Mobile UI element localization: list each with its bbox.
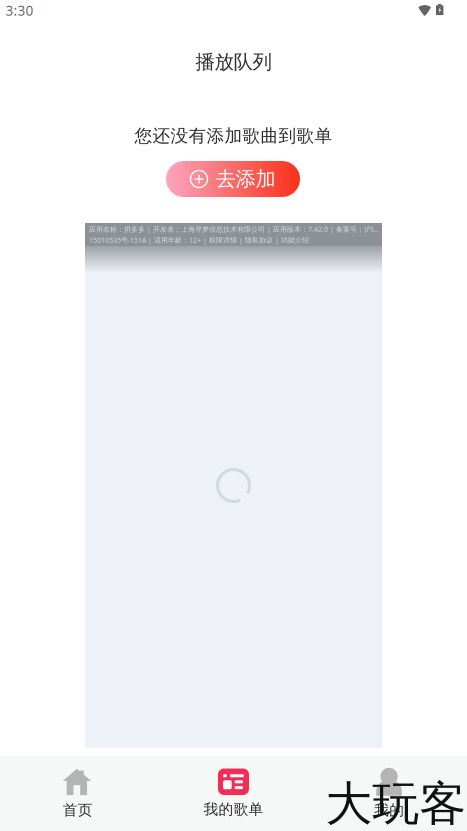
button[interactable]: 我的 [311, 756, 467, 831]
staticText: 首页 [63, 801, 93, 819]
button[interactable]: 首页 [0, 756, 156, 831]
staticText: 我的歌单 [203, 800, 263, 818]
staticText: 15010535号-151A | 适用年龄：12+ | 权限详情 | 隐私协议 … [89, 235, 309, 245]
staticText: 3:30 [5, 1, 33, 20]
button[interactable]: 我的歌单 [156, 756, 311, 831]
staticText: 去添加 [215, 166, 275, 192]
staticText: 您还没有添加歌曲到歌单 [134, 125, 332, 147]
staticText: 播放队列 [195, 50, 271, 74]
staticText: 应用名称：拼多多 | 开发者：上海寻梦信息技术有限公司 | 应用版本：7.42.… [89, 224, 380, 234]
staticText: 我的 [374, 801, 404, 819]
button[interactable]: 去添加 [166, 161, 300, 197]
staticText: 大玩客 [325, 775, 466, 831]
